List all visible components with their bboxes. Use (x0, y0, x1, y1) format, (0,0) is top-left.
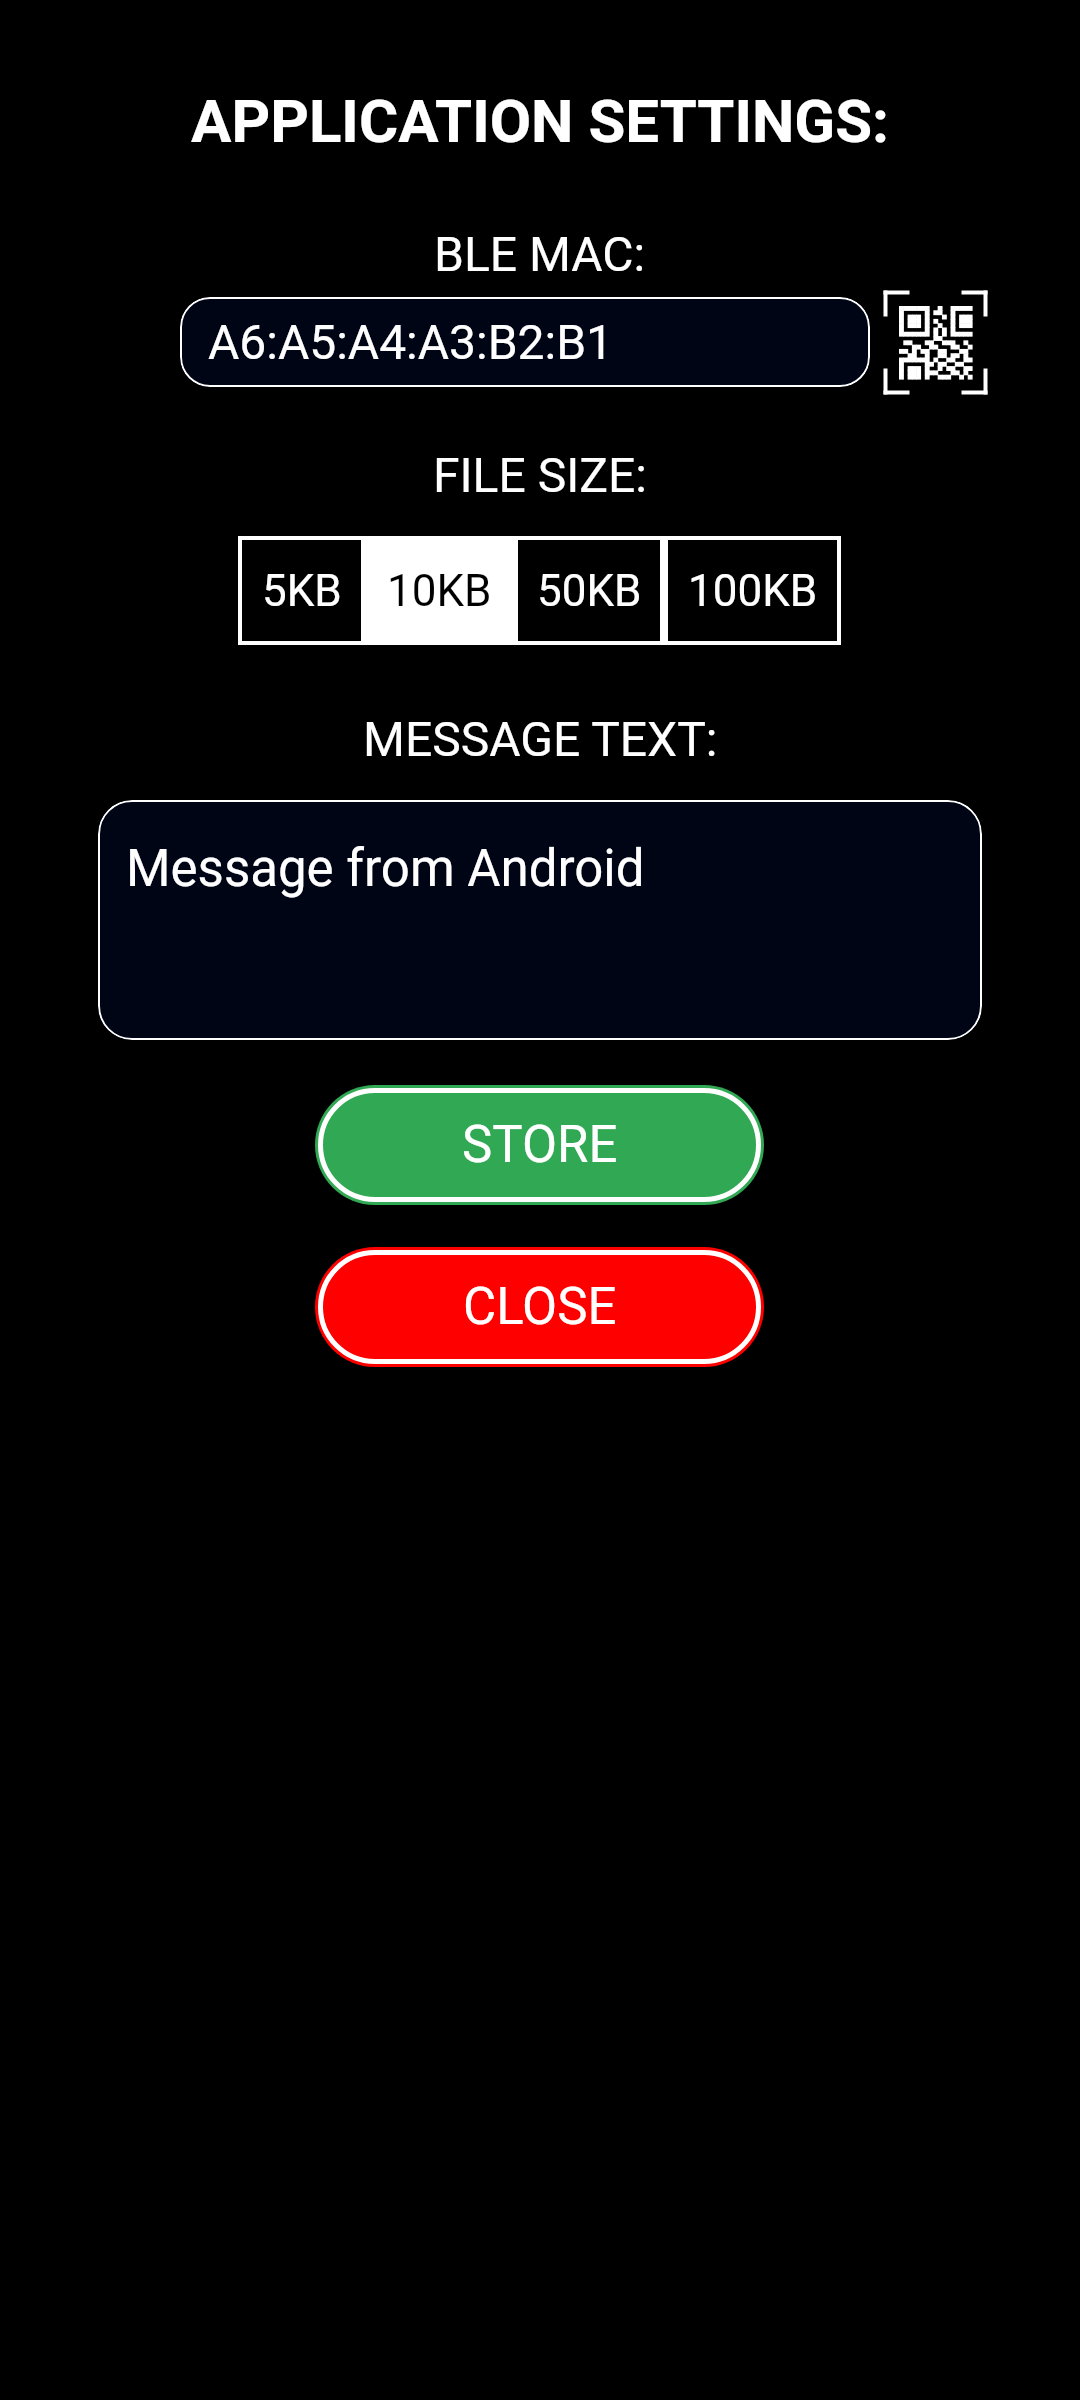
staticText: STORE (462, 1115, 618, 1175)
button[interactable]: STORE (318, 1088, 761, 1202)
button[interactable]: 5KB (238, 536, 365, 645)
staticText: FILE SIZE: (433, 447, 647, 503)
button[interactable]: CLOSE (318, 1250, 761, 1364)
staticText: 100KB (688, 565, 818, 617)
button[interactable]: Scan QR code (883, 290, 988, 395)
staticText: Message from Android (126, 839, 645, 899)
button[interactable]: 10KB (365, 536, 514, 645)
button[interactable]: 100KB (664, 536, 841, 645)
button[interactable]: A6:A5:A4:A3:B2:B1 (180, 297, 870, 387)
staticText: APPLICATION SETTINGS: (191, 86, 889, 156)
staticText: MESSAGE TEXT: (363, 711, 718, 767)
button[interactable]: Message from Android (98, 800, 982, 1040)
button[interactable]: 50KB (514, 536, 664, 645)
staticText: 5KB (262, 565, 342, 617)
staticText: A6:A5:A4:A3:B2:B1 (208, 314, 614, 370)
staticText: 10KB (387, 565, 492, 617)
staticText: 50KB (537, 565, 642, 617)
staticText: CLOSE (463, 1277, 617, 1337)
staticText: BLE MAC: (434, 226, 646, 282)
